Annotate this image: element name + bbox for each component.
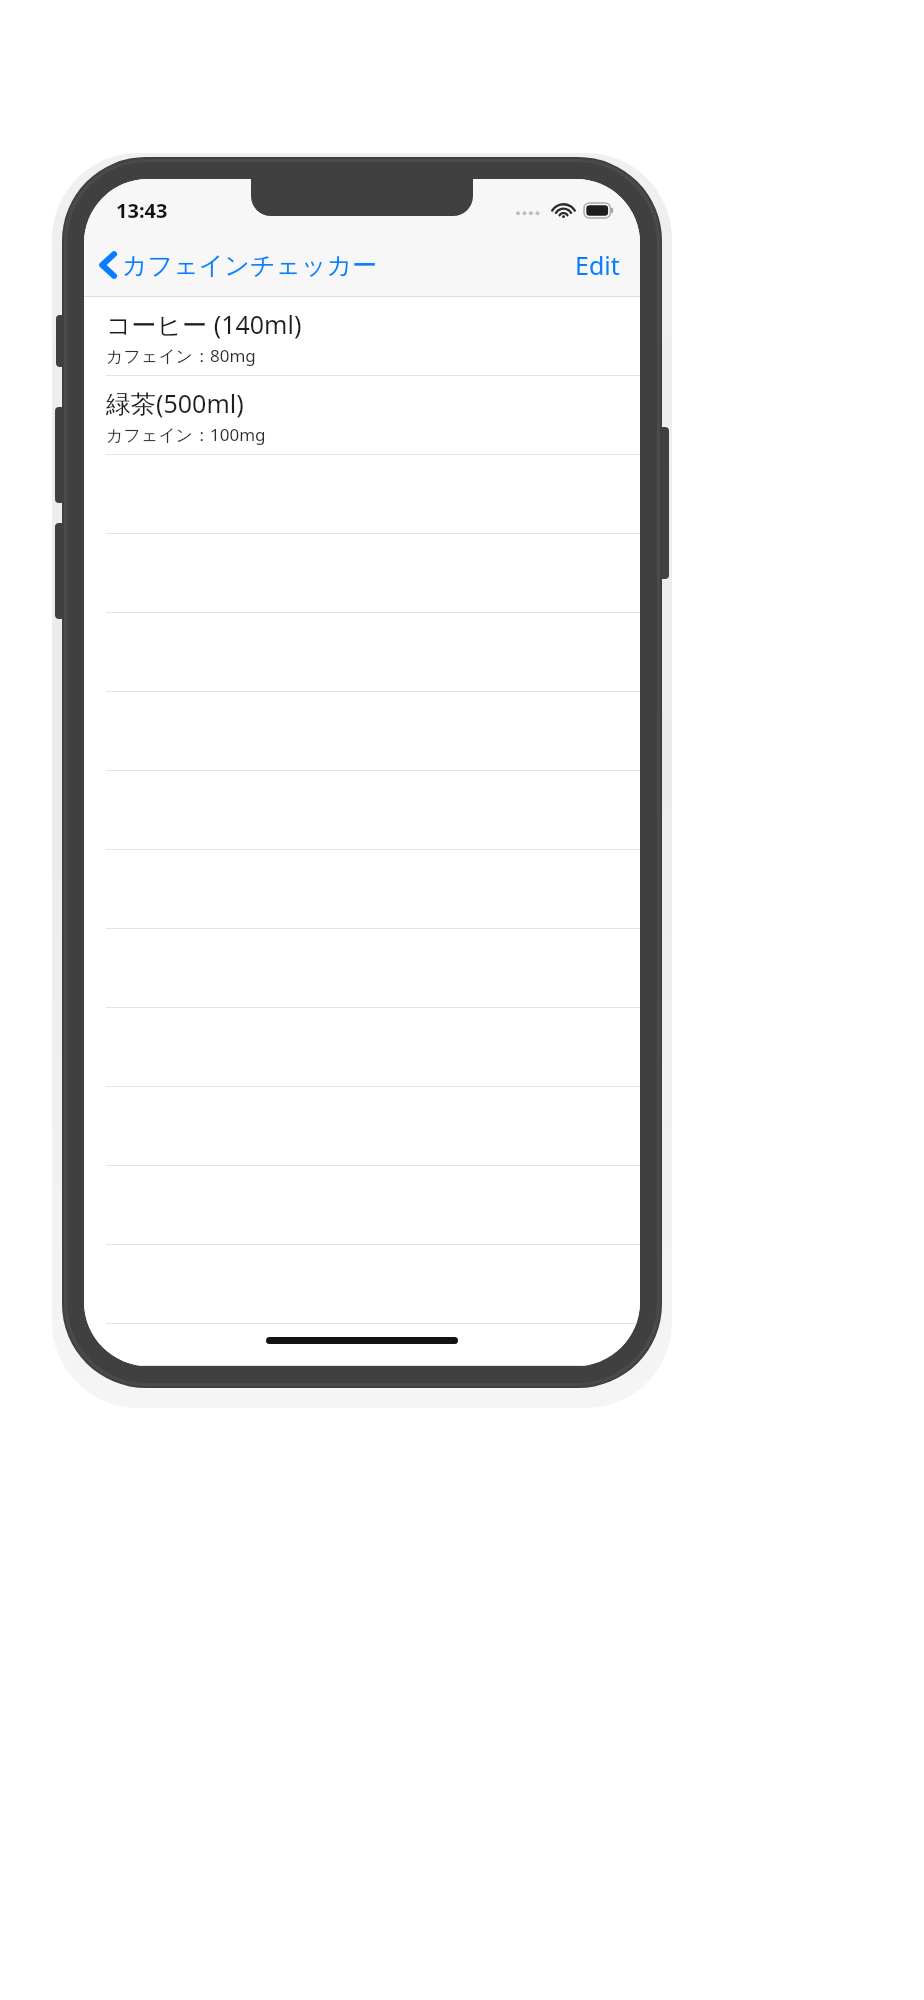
- other: Back: [98, 249, 118, 281]
- staticText: 緑茶(500ml): [106, 386, 244, 420]
- button[interactable]: Back: [84, 243, 388, 287]
- staticText: カフェイン：100mg: [106, 423, 266, 446]
- button[interactable]: Edit: [555, 240, 640, 290]
- button[interactable]: コーヒー (140ml): [84, 297, 640, 376]
- staticText: 13:43: [116, 197, 168, 224]
- button[interactable]: 緑茶(500ml): [84, 376, 640, 455]
- staticText: カフェインチェッカー: [122, 250, 378, 281]
- staticText: Edit: [575, 248, 620, 282]
- staticText: コーヒー (140ml): [106, 307, 302, 341]
- staticText: カフェイン：80mg: [106, 344, 256, 367]
